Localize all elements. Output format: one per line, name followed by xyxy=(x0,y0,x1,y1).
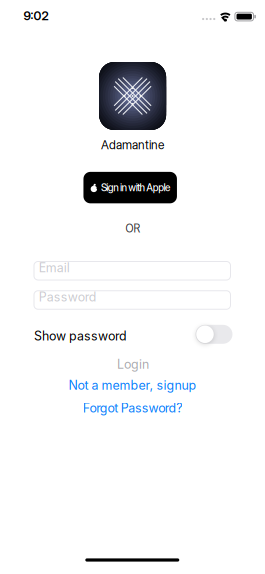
staticText: OR xyxy=(125,222,140,235)
staticText: Sign in with Apple xyxy=(101,182,170,194)
button[interactable]: Login xyxy=(117,357,149,372)
staticText: Not a member, signup xyxy=(68,378,196,393)
staticText: Email xyxy=(39,260,70,275)
staticText: Forgot Password? xyxy=(83,400,182,415)
button[interactable]: Show password xyxy=(34,325,232,344)
staticText: Adamantine xyxy=(101,137,164,152)
staticText: Show password xyxy=(34,329,127,344)
staticText: Login xyxy=(117,357,149,372)
staticText: 9:02 xyxy=(23,8,48,23)
button[interactable]: Not a member, signup xyxy=(68,378,196,393)
staticText: Password xyxy=(39,289,97,304)
button[interactable]: Sign in with Apple xyxy=(83,172,177,203)
button[interactable]: Forgot Password? xyxy=(83,400,182,415)
